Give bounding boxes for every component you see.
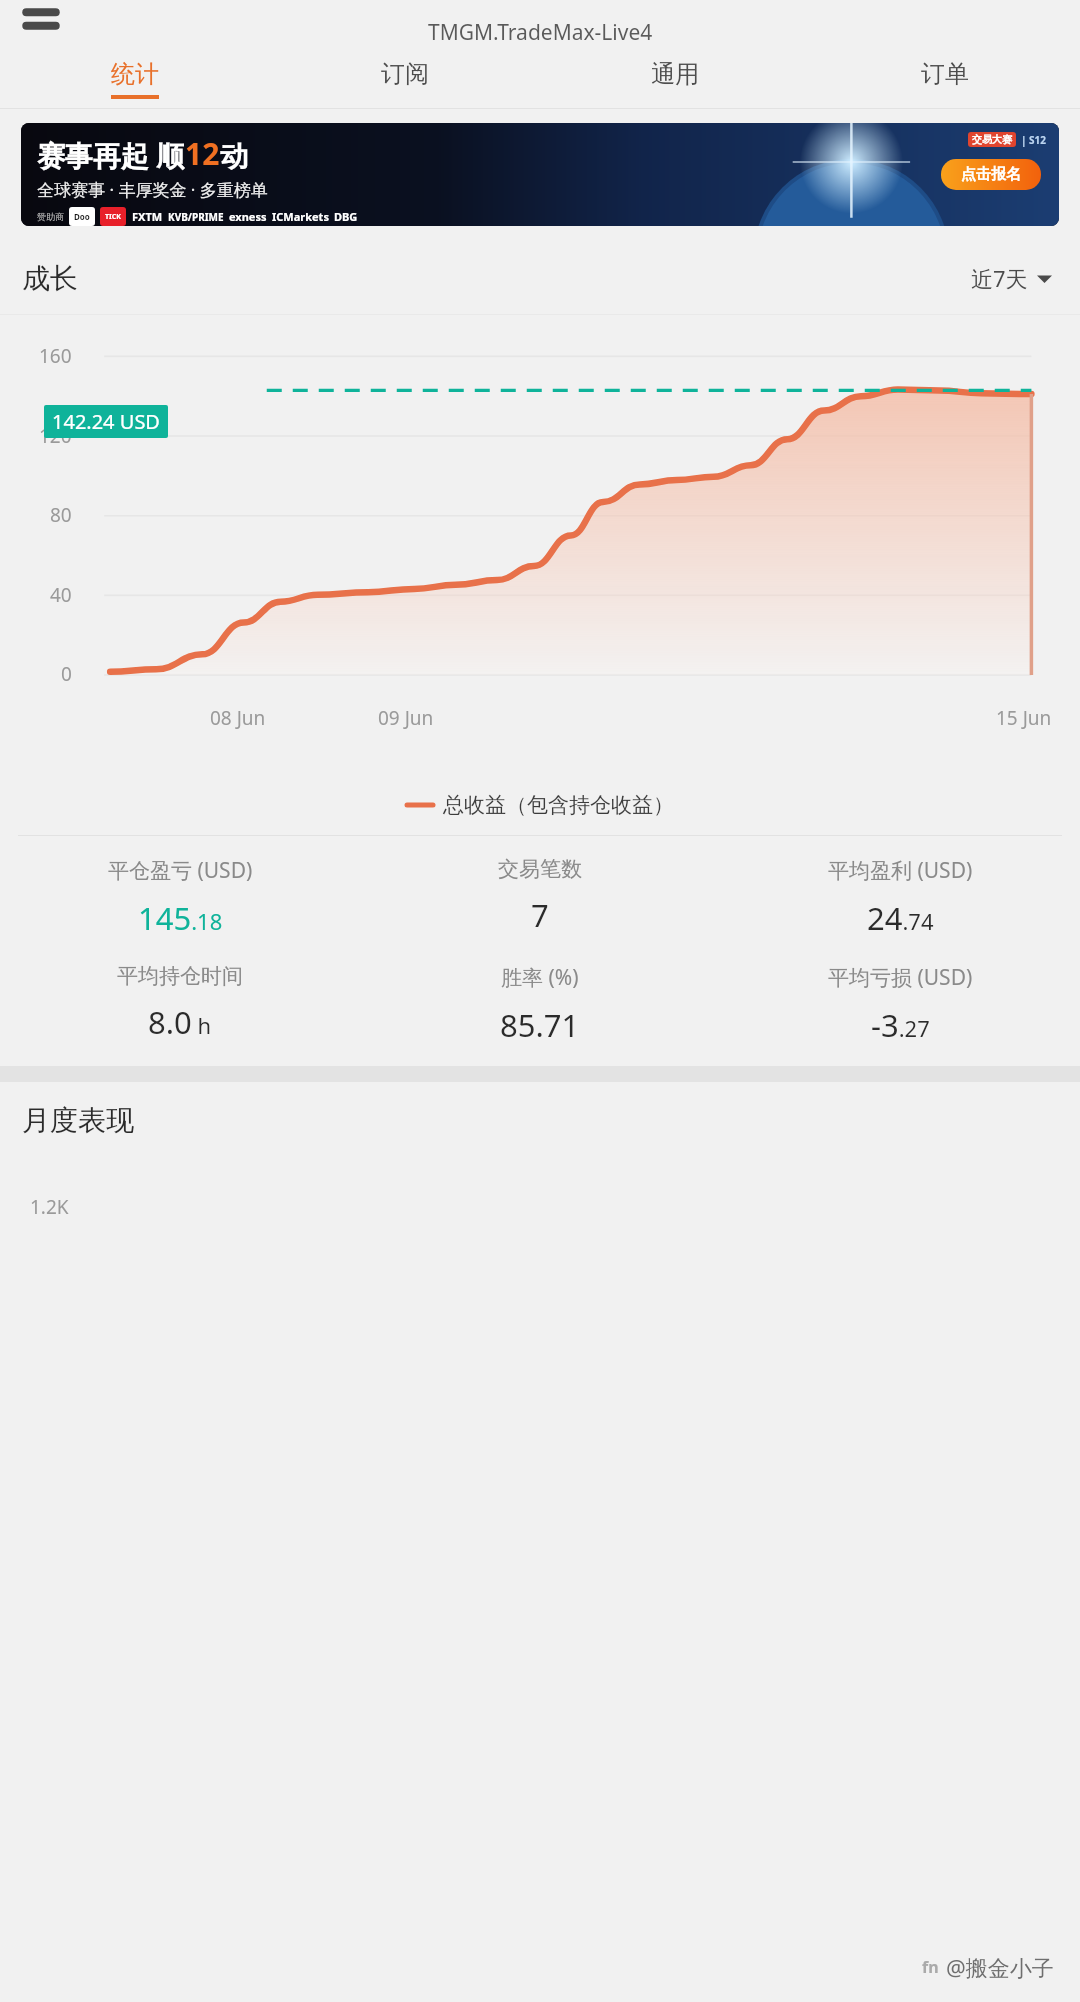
staticText: Doo	[74, 211, 90, 222]
staticText: 平均盈利 (USD)	[828, 856, 973, 885]
staticText: 1.2K	[30, 1194, 69, 1220]
button[interactable]: 订阅	[270, 50, 540, 108]
staticText: 8.0 h	[148, 1001, 212, 1043]
staticText: -3.27	[871, 1004, 930, 1046]
staticText: TICK	[105, 212, 121, 222]
staticText: 订阅	[381, 59, 429, 89]
staticText: 80	[50, 502, 72, 528]
staticText: 平均持仓时间	[117, 963, 243, 989]
staticText: fn	[922, 1956, 939, 1978]
staticText: 12	[185, 133, 220, 174]
staticText: 赞助商	[37, 211, 64, 222]
staticText: 近7天	[971, 263, 1028, 293]
staticText: 09 Jun	[378, 705, 434, 731]
staticText: 7	[531, 894, 549, 936]
button[interactable]: 统计	[0, 50, 270, 108]
button[interactable]: 赛事再起 顺	[21, 123, 1059, 226]
staticText: 85.71	[500, 1004, 580, 1046]
staticText: 24.74	[867, 897, 934, 939]
staticText: TMGM.TradeMax-Live4	[428, 18, 653, 47]
staticText: 订单	[921, 59, 969, 89]
staticText: | S12	[1021, 133, 1047, 147]
staticText: 160	[39, 343, 72, 369]
staticText: 统计	[111, 59, 159, 89]
button[interactable]: 近7天	[965, 257, 1058, 299]
staticText: @搬金小子	[946, 1952, 1054, 1982]
staticText: ICMarkets	[272, 209, 329, 224]
staticText: 15 Jun	[996, 705, 1052, 731]
staticText: 平仓盈亏 (USD)	[108, 856, 253, 885]
staticText: 120	[39, 423, 72, 449]
staticText: 142.24 USD	[52, 408, 160, 435]
button[interactable]: Menu	[18, 2, 64, 48]
button[interactable]: 订单	[810, 50, 1080, 108]
staticText: DBG	[334, 209, 358, 224]
staticText: FXTM	[132, 209, 163, 224]
staticText: KVB/PRIME	[168, 210, 224, 224]
staticText: 145.18	[138, 897, 223, 939]
staticText: 交易笔数	[498, 856, 582, 882]
staticText: 赛事再起 顺	[37, 136, 185, 174]
staticText: 月度表现	[22, 1103, 134, 1138]
staticText: 胜率 (%)	[501, 963, 579, 992]
staticText: 点击报名	[961, 165, 1021, 184]
staticText: 动	[220, 139, 248, 174]
staticText: 交易大赛	[972, 133, 1012, 146]
staticText: 平均亏损 (USD)	[828, 963, 973, 992]
button[interactable]: 点击报名	[941, 159, 1041, 190]
staticText: 通用	[651, 59, 699, 89]
staticText: 0	[61, 661, 72, 687]
staticText: 成长	[22, 261, 78, 296]
staticText: 总收益（包含持仓收益）	[443, 792, 674, 818]
staticText: 40	[50, 582, 72, 608]
staticText: 08 Jun	[210, 705, 266, 731]
button[interactable]: 通用	[540, 50, 810, 108]
staticText: 全球赛事 · 丰厚奖金 · 多重榜单	[37, 178, 268, 201]
staticText: exness	[229, 209, 267, 224]
